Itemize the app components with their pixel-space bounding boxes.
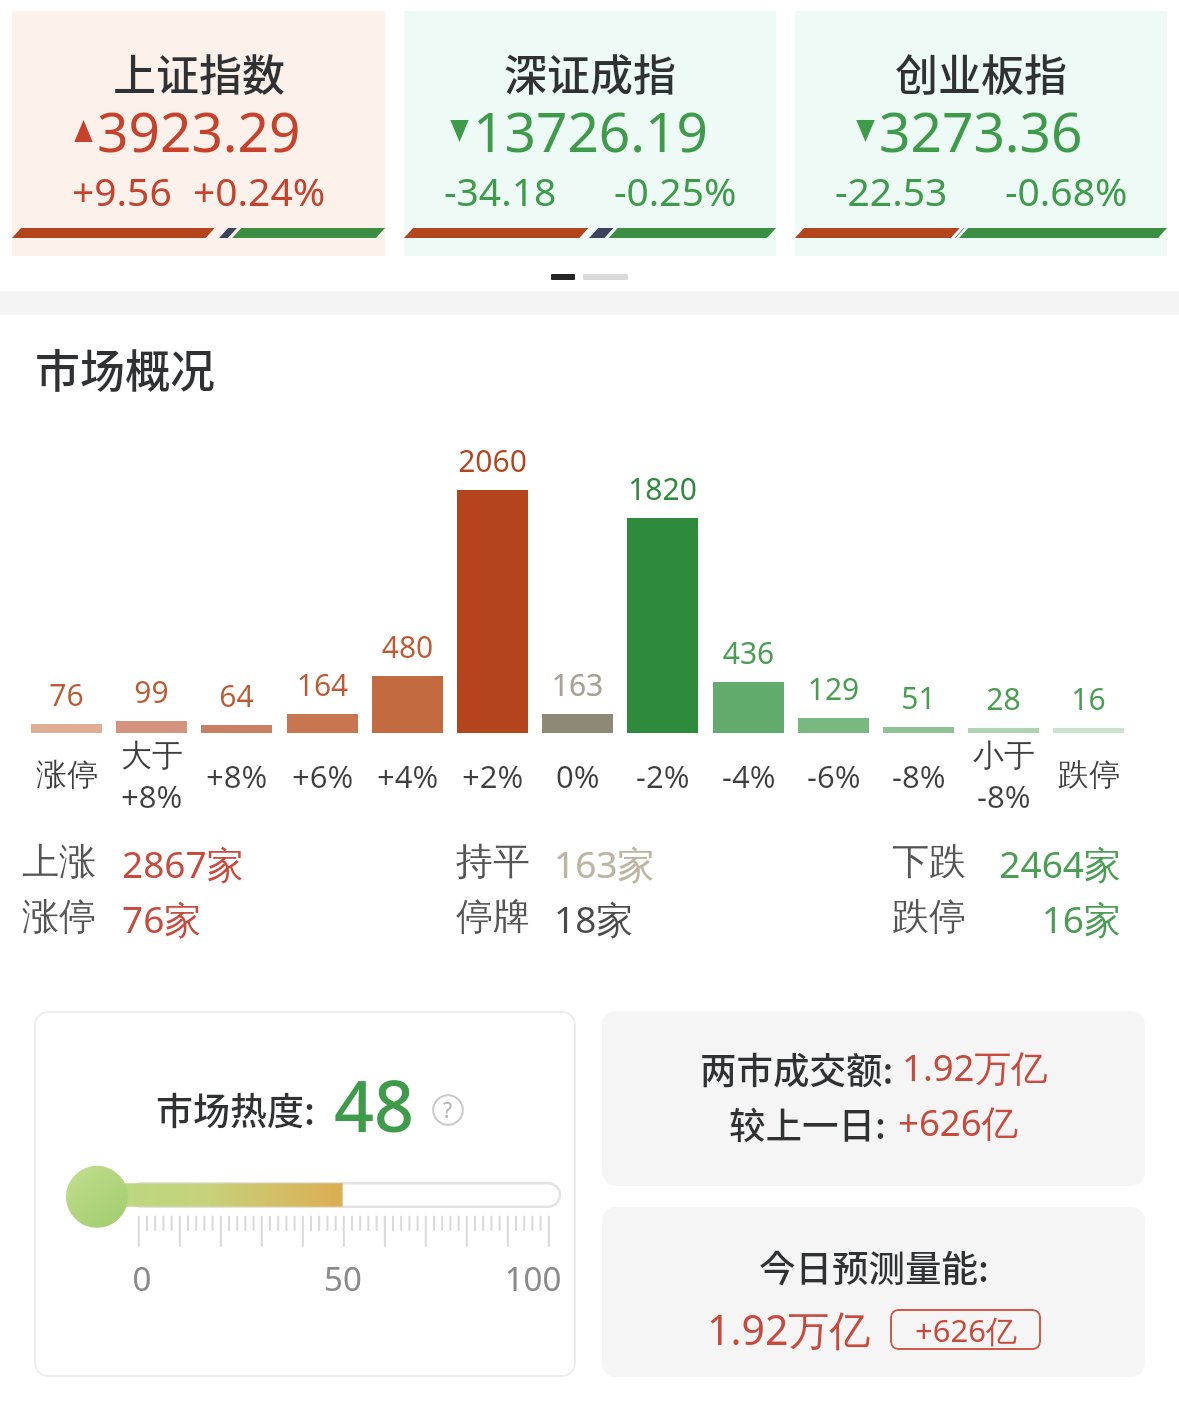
staticText: 大于: [121, 736, 183, 775]
staticText: +6%: [292, 755, 354, 797]
staticText: 129: [773, 668, 894, 709]
staticText: 2060: [432, 440, 553, 481]
staticText: 0%: [556, 755, 600, 797]
staticText: 28: [943, 678, 1064, 719]
staticText: 99: [91, 671, 212, 712]
staticText: +8%: [121, 775, 183, 817]
staticText: 163: [517, 664, 638, 705]
staticText: 跌停: [1058, 755, 1120, 794]
staticText: 两市成交额:: [700, 1042, 894, 1095]
button[interactable]: 今日预测量能:: [602, 1207, 1145, 1377]
staticText: 50: [283, 1256, 403, 1301]
staticText: -4%: [722, 755, 776, 797]
staticText: +2%: [462, 755, 524, 797]
staticText: 64: [176, 675, 297, 716]
staticText: 76: [6, 674, 127, 715]
staticText: 上证指数: [113, 41, 285, 103]
staticText: -0.25%: [614, 164, 737, 217]
staticText: 深证成指: [504, 41, 676, 103]
staticText: 较上一日:: [729, 1097, 886, 1150]
staticText: 76家: [122, 893, 202, 944]
staticText: 13726.19: [473, 93, 708, 168]
staticText: 涨停: [22, 893, 96, 940]
staticText: 停牌: [456, 893, 530, 940]
staticText: +4%: [377, 755, 439, 797]
staticText: -8%: [977, 775, 1031, 817]
staticText: -0.68%: [1005, 164, 1128, 217]
staticText: 1820: [602, 468, 723, 509]
button[interactable]: 市场热度:: [34, 1011, 576, 1377]
button[interactable]: 创业板指: [795, 11, 1167, 256]
staticText: 163家: [554, 838, 655, 889]
staticText: +8%: [206, 755, 268, 797]
staticText: 436: [688, 632, 809, 673]
staticText: 下跌: [892, 838, 966, 885]
staticText: 16家: [871, 893, 1121, 944]
button[interactable]: 上证指数: [12, 11, 385, 256]
staticText: 小于: [973, 736, 1035, 775]
button[interactable]: 两市成交额:: [602, 1011, 1145, 1186]
staticText: 0: [82, 1256, 202, 1301]
staticText: +0.24%: [193, 164, 326, 217]
staticText: 上涨: [22, 838, 96, 885]
staticText: +9.56: [72, 164, 172, 217]
staticText: ?: [443, 1096, 453, 1125]
staticText: -8%: [892, 755, 946, 797]
staticText: 480: [347, 626, 468, 667]
staticText: 2464家: [871, 838, 1121, 889]
button[interactable]: 市场热度说明: [432, 1094, 464, 1126]
staticText: 3273.36: [879, 93, 1083, 168]
staticText: 3923.29: [97, 93, 301, 168]
staticText: +626亿: [898, 1097, 1019, 1147]
staticText: 100: [473, 1256, 576, 1301]
staticText: -2%: [636, 755, 690, 797]
staticText: 48: [334, 1057, 415, 1152]
staticText: 创业板指: [895, 41, 1067, 103]
staticText: 18家: [554, 893, 634, 944]
staticText: +626亿: [915, 1309, 1017, 1350]
staticText: 今日预测量能:: [759, 1240, 989, 1293]
staticText: -6%: [807, 755, 861, 797]
staticText: 51: [858, 677, 979, 718]
staticText: 市场热度:: [156, 1082, 316, 1136]
staticText: -34.18: [444, 164, 557, 217]
staticText: 164: [262, 664, 383, 705]
staticText: 持平: [456, 838, 530, 885]
staticText: 涨停: [36, 755, 98, 794]
staticText: 市场概况: [35, 336, 216, 401]
staticText: 跌停: [892, 893, 966, 940]
staticText: 1.92万亿: [902, 1042, 1048, 1092]
staticText: 16: [1028, 678, 1149, 719]
staticText: 2867家: [122, 838, 244, 889]
button[interactable]: 深证成指: [404, 11, 776, 256]
staticText: -22.53: [835, 164, 948, 217]
staticText: 1.92万亿: [707, 1301, 871, 1357]
